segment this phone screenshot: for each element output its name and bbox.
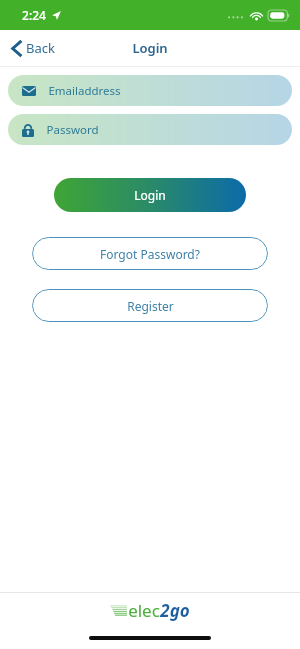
- staticText: Password: [46, 122, 99, 138]
- staticText: Login: [132, 39, 168, 57]
- staticText: 2go: [160, 599, 190, 622]
- button[interactable]: Password: [8, 114, 292, 145]
- button[interactable]: Emailaddress: [8, 75, 292, 106]
- button[interactable]: Forgot Password?: [32, 237, 268, 270]
- staticText: Emailaddress: [48, 83, 121, 99]
- staticText: 2:24: [22, 7, 46, 23]
- staticText: Login: [134, 187, 166, 203]
- button[interactable]: Back: [8, 35, 59, 61]
- staticText: Forgot Password?: [100, 246, 200, 262]
- staticText: elec: [128, 599, 160, 622]
- button[interactable]: Register: [32, 289, 268, 322]
- button[interactable]: Login: [54, 178, 246, 212]
- staticText: Back: [26, 39, 55, 57]
- staticText: Register: [127, 298, 174, 314]
